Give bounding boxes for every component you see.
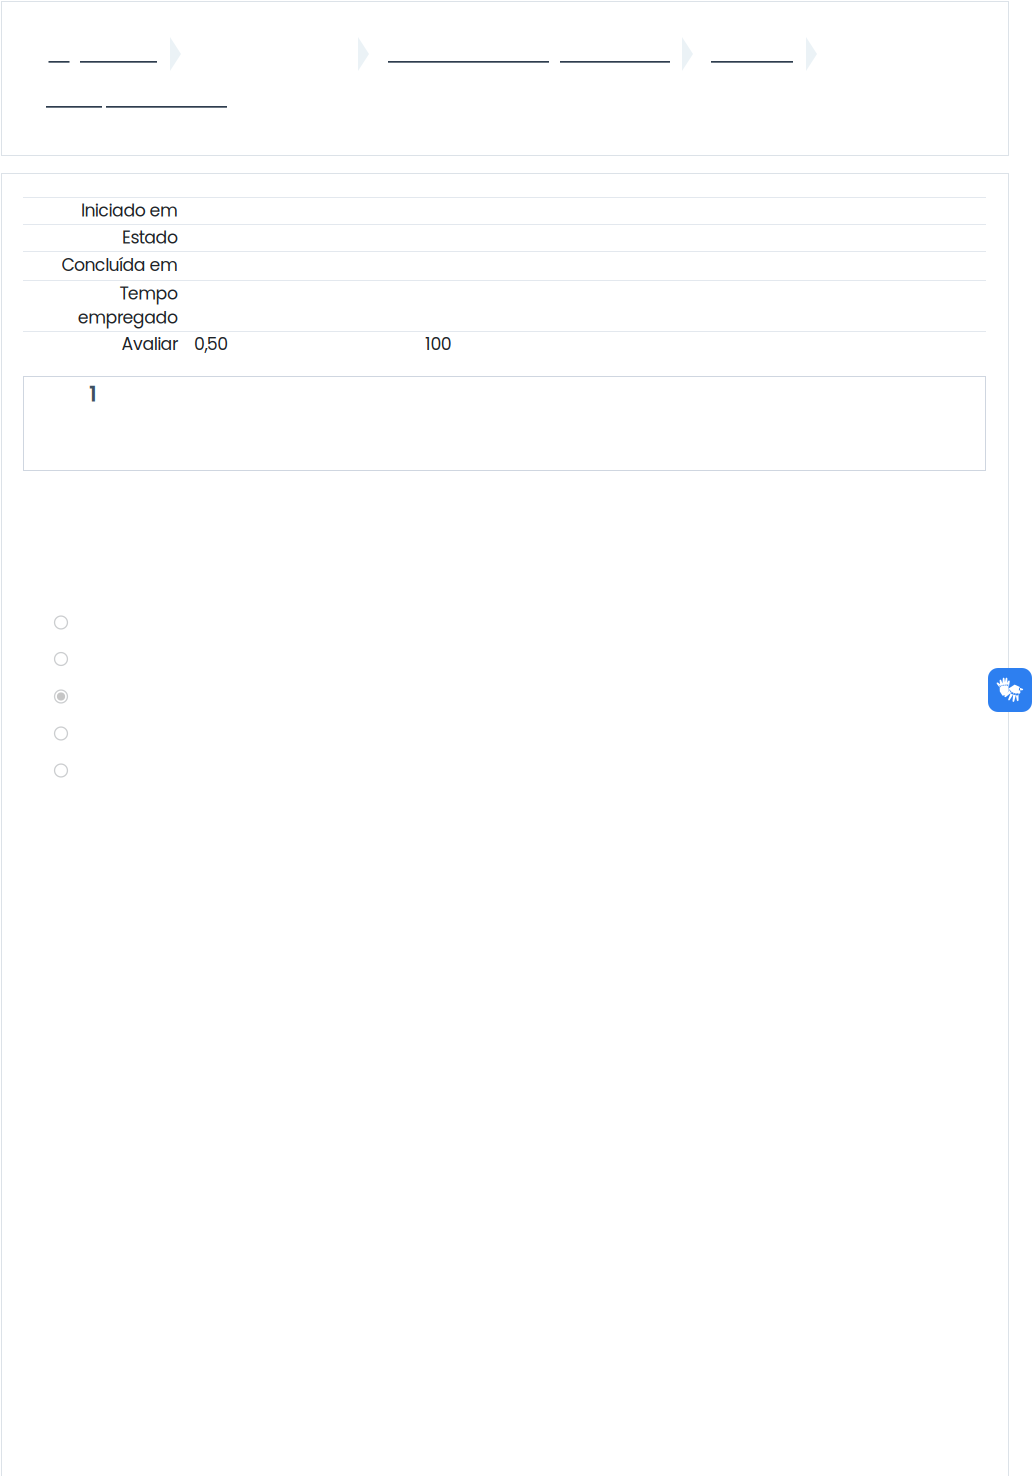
- button[interactable]: Alternativa 3, selecionada: [50, 685, 72, 707]
- staticText: Estado: [122, 225, 178, 250]
- button[interactable]: Curso: [388, 61, 549, 63]
- button[interactable]: Disciplina: [560, 61, 670, 63]
- button[interactable]: Página inicial: [48, 61, 69, 63]
- button[interactable]: Alternativa 5: [50, 759, 72, 781]
- button[interactable]: Alternativa 1: [50, 611, 72, 633]
- staticText: Concluída em: [62, 253, 178, 277]
- button[interactable]: Alternativa 2: [50, 648, 72, 670]
- button[interactable]: Questionário: [46, 106, 102, 108]
- button[interactable]: Meus cursos: [80, 61, 157, 63]
- staticText: Avaliar: [122, 332, 178, 356]
- button[interactable]: Tentativa: [106, 106, 227, 108]
- staticText: empregado: [78, 305, 178, 330]
- staticText: 1: [89, 379, 97, 409]
- staticText: Tempo: [119, 281, 178, 306]
- staticText: Iniciado em: [81, 198, 178, 223]
- button[interactable]: Alternativa 4: [50, 722, 72, 744]
- staticText: 100: [425, 332, 452, 356]
- staticText: 0,50: [194, 332, 228, 356]
- button[interactable]: VLibras sign language: [988, 668, 1032, 712]
- button[interactable]: Unidade: [711, 61, 793, 63]
